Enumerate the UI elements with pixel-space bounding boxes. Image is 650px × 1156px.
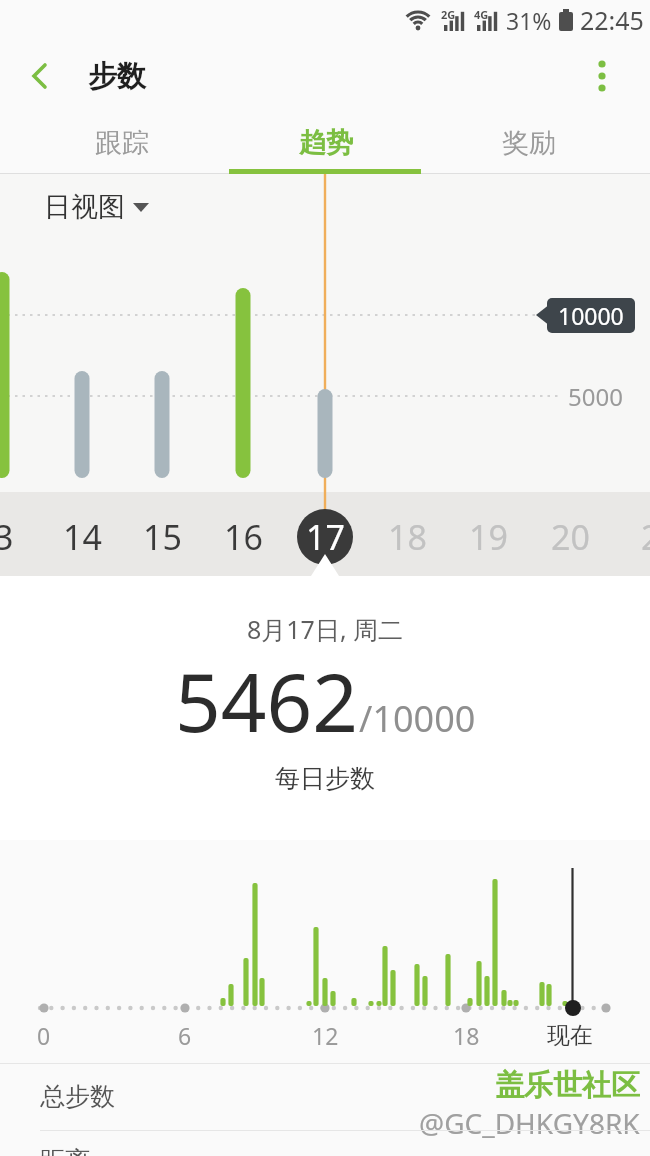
- staticText: 5000: [568, 380, 623, 412]
- staticText: @GC_DHKGY8RK: [419, 1104, 640, 1142]
- staticText: 跟踪: [95, 126, 149, 160]
- button[interactable]: [16, 52, 64, 100]
- button[interactable]: 日视图: [44, 190, 149, 224]
- button[interactable]: 19: [452, 501, 524, 573]
- staticText: 16: [224, 514, 263, 560]
- button[interactable]: 3: [0, 501, 40, 573]
- button[interactable]: 14: [46, 501, 118, 573]
- staticText: 17: [306, 514, 345, 560]
- staticText: 4G: [474, 7, 489, 22]
- staticText: 21: [641, 514, 650, 560]
- button[interactable]: 总步数: [0, 1064, 650, 1130]
- staticText: 步数: [88, 58, 146, 95]
- button[interactable]: 跟踪: [20, 112, 224, 174]
- button[interactable]: 17: [289, 501, 361, 573]
- staticText: 日视图: [44, 190, 125, 224]
- staticText: 18: [453, 1020, 480, 1051]
- staticText: 22:45: [580, 3, 644, 37]
- staticText: 14: [63, 514, 102, 560]
- button[interactable]: 奖励: [427, 112, 630, 174]
- button[interactable]: 趋势: [224, 112, 427, 174]
- button[interactable]: 20: [534, 501, 606, 573]
- staticText: 15: [143, 514, 182, 560]
- button[interactable]: 21: [624, 501, 650, 573]
- staticText: 5462: [175, 646, 359, 755]
- staticText: 0: [37, 1020, 51, 1051]
- staticText: 奖励: [502, 126, 556, 160]
- button[interactable]: 16: [207, 501, 279, 573]
- staticText: 6: [178, 1020, 192, 1051]
- staticText: 19: [469, 514, 508, 560]
- staticText: 距离: [40, 1145, 90, 1156]
- staticText: 2G: [441, 7, 456, 22]
- staticText: 现在: [547, 1021, 593, 1050]
- staticText: 每日步数: [275, 763, 375, 794]
- staticText: 10000: [558, 300, 624, 331]
- button[interactable]: 18: [371, 501, 443, 573]
- staticText: 18: [388, 514, 427, 560]
- staticText: 31%: [506, 5, 552, 36]
- staticText: 8月17日, 周二: [247, 612, 404, 646]
- staticText: 盖乐世社区: [495, 1067, 640, 1104]
- staticText: 趋势: [299, 126, 353, 160]
- staticText: 20: [551, 514, 590, 560]
- button[interactable]: [580, 54, 624, 98]
- staticText: 总步数: [40, 1081, 115, 1112]
- staticText: /10000: [359, 694, 476, 743]
- staticText: 12: [312, 1020, 339, 1051]
- button[interactable]: 15: [126, 501, 198, 573]
- staticText: 3: [0, 514, 14, 560]
